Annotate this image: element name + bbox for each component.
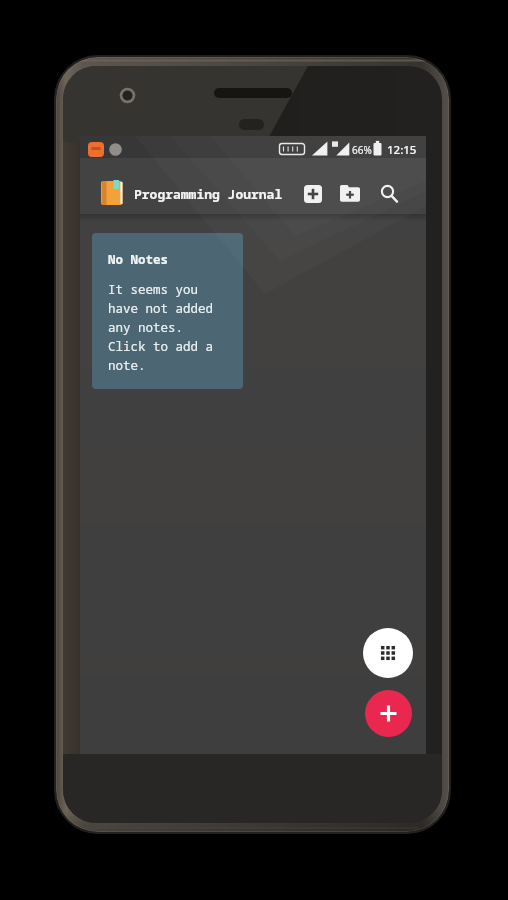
button[interactable] — [335, 180, 364, 208]
staticText: It seems you have not added any notes. C… — [108, 281, 214, 373]
staticText: No Notes — [108, 251, 169, 268]
button[interactable]: No Notes — [92, 233, 243, 389]
staticText: Programming Journal — [134, 185, 283, 203]
staticText: 12:15 — [387, 142, 417, 158]
button[interactable] — [299, 180, 327, 208]
button[interactable] — [363, 628, 413, 678]
button[interactable] — [365, 690, 412, 737]
button[interactable] — [375, 180, 404, 208]
staticText: 66% — [352, 143, 372, 157]
